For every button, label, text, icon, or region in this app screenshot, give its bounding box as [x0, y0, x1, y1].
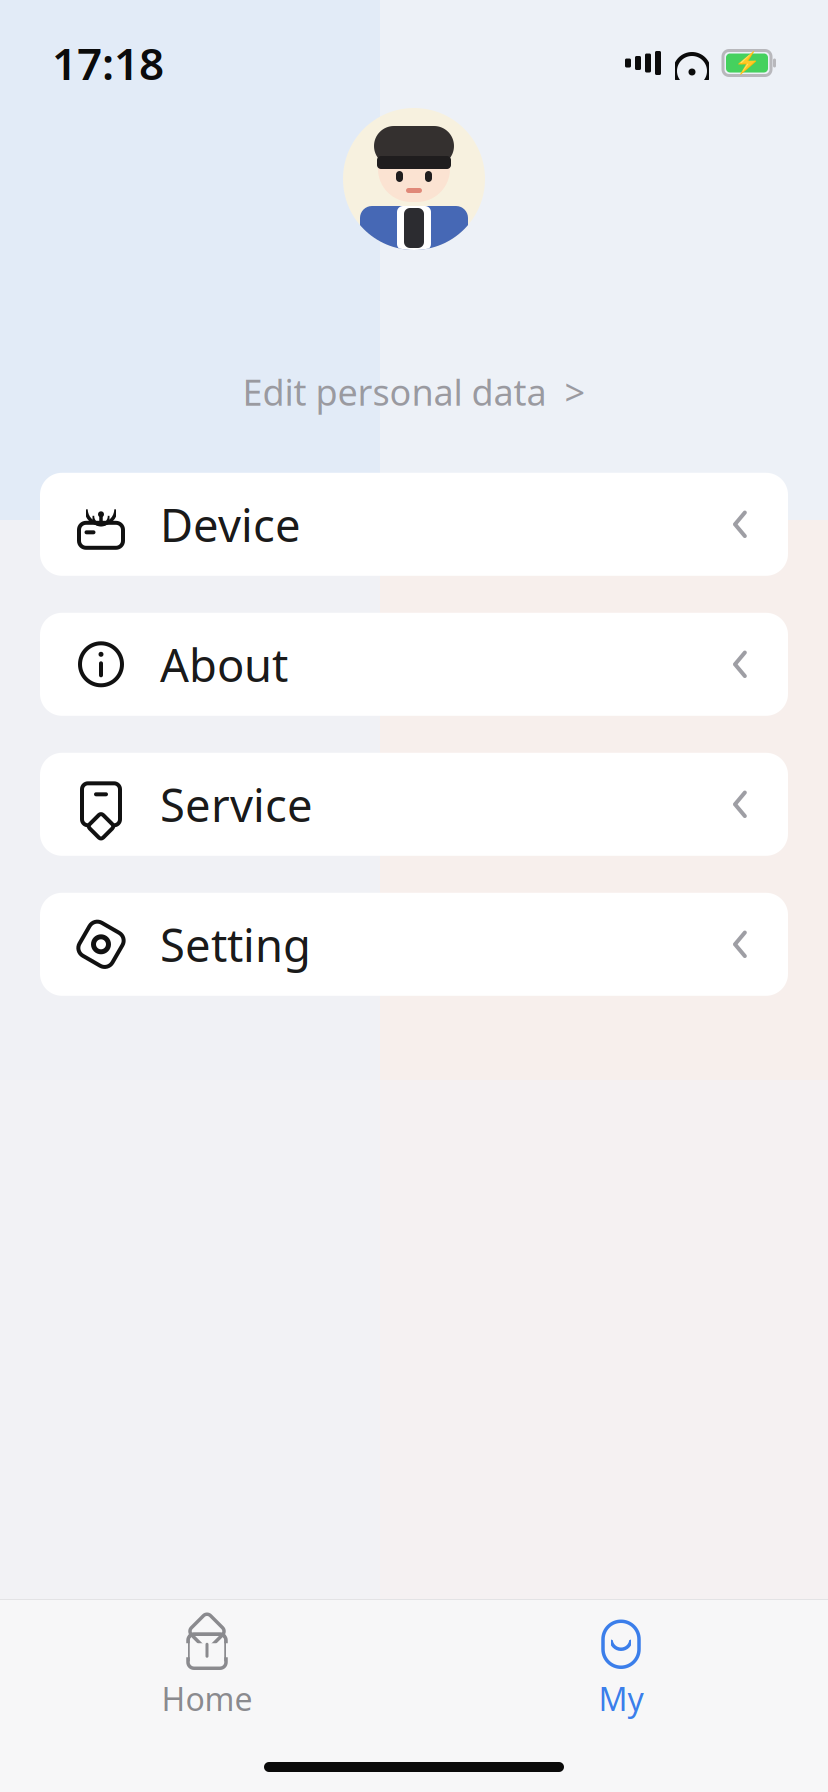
button[interactable]: Profile photo: [343, 108, 485, 250]
button[interactable]: Edit personal data >: [218, 358, 609, 426]
staticText: Setting: [160, 914, 311, 974]
button[interactable]: Setting: [40, 893, 788, 996]
staticText: About: [160, 634, 288, 694]
button[interactable]: My: [414, 1608, 828, 1732]
staticText: Device: [160, 494, 301, 554]
staticText: My: [598, 1677, 643, 1720]
button[interactable]: About: [40, 613, 788, 716]
staticText: ⚡: [733, 51, 760, 75]
staticText: Service: [160, 774, 313, 834]
staticText: 17:18: [52, 34, 164, 92]
staticText: Edit personal data >: [242, 368, 585, 416]
button[interactable]: Device: [40, 473, 788, 576]
staticText: Home: [161, 1677, 252, 1720]
button[interactable]: Home: [0, 1608, 414, 1732]
button[interactable]: Service: [40, 753, 788, 856]
